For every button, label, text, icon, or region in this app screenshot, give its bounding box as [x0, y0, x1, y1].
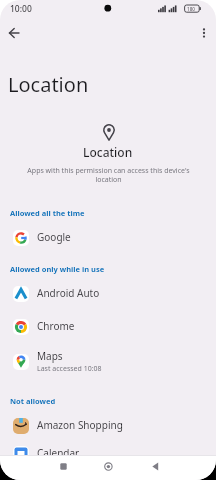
staticText: Apps with this permission can access thi… — [27, 166, 190, 184]
staticText: Not allowed — [10, 396, 56, 406]
button[interactable]: Android Auto — [0, 278, 216, 310]
button[interactable] — [194, 23, 214, 43]
staticText: Google — [37, 230, 71, 244]
staticText: 10:00 — [10, 3, 32, 15]
staticText: Location — [83, 144, 133, 160]
staticText: Location — [8, 71, 89, 98]
staticText: Chrome — [37, 319, 75, 333]
button[interactable]: Maps — [0, 346, 216, 378]
button[interactable]: Google — [0, 222, 216, 254]
button[interactable] — [72, 455, 144, 480]
staticText: 180 — [187, 6, 195, 12]
staticText: Allowed only while in use — [10, 264, 105, 274]
staticText: Allowed all the time — [10, 208, 85, 218]
staticText: Amazon Shopping — [37, 418, 123, 432]
staticText: Calendar — [37, 446, 80, 460]
button[interactable] — [144, 455, 216, 480]
staticText: Maps — [37, 349, 63, 363]
staticText: Android Auto — [37, 286, 100, 300]
button[interactable] — [0, 455, 72, 480]
button[interactable]: Amazon Shopping — [0, 410, 216, 442]
button[interactable]: Chrome — [0, 311, 216, 343]
staticText: Last accessed 10:08 — [37, 364, 102, 374]
button[interactable]: Calendar — [0, 438, 216, 470]
button[interactable] — [4, 23, 24, 43]
